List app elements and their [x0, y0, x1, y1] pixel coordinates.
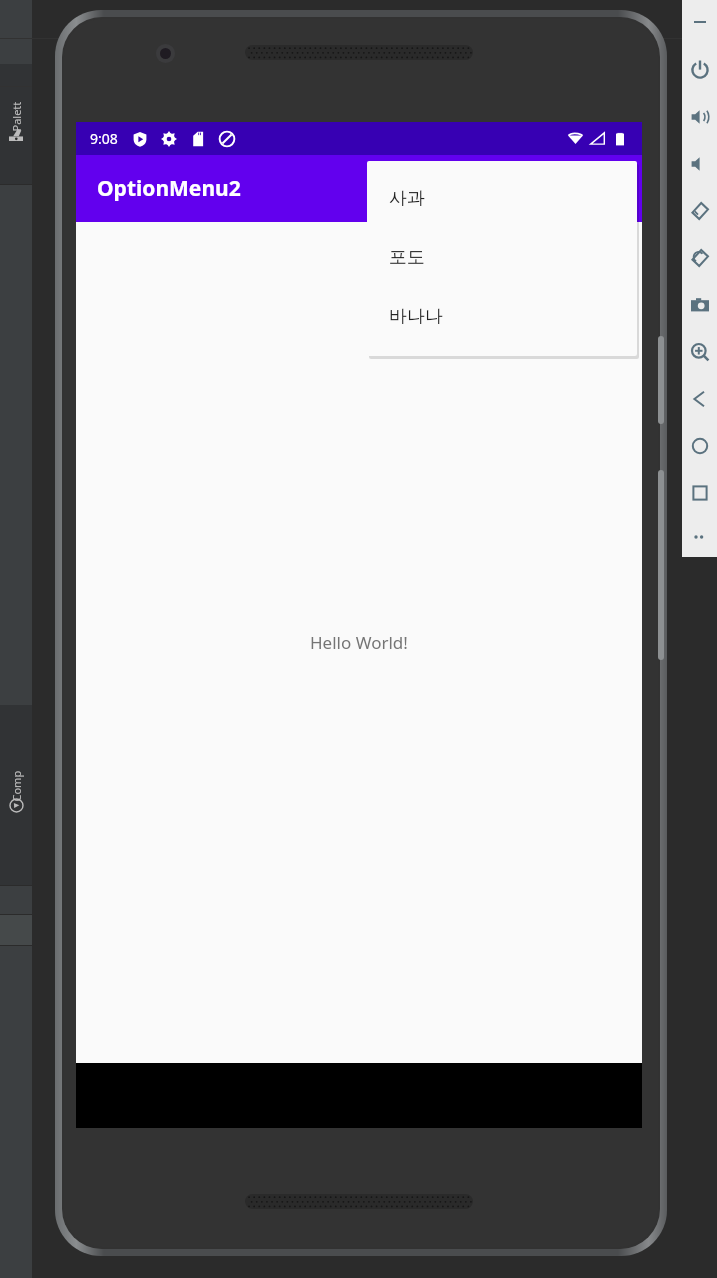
button[interactable]: Zoom [682, 328, 717, 375]
staticText: OptionMenu2 [97, 174, 241, 203]
button[interactable]: Power [682, 46, 717, 93]
button[interactable]: 포도 [367, 228, 637, 287]
staticText: 9:08 [90, 129, 118, 148]
button[interactable]: Palette [0, 64, 32, 184]
staticText: Component Tree [8, 769, 23, 801]
button[interactable]: Rotate left [682, 187, 717, 234]
staticText: 포도 [389, 246, 425, 269]
button[interactable]: Component Tree [0, 705, 32, 885]
button[interactable]: Back [682, 375, 717, 422]
staticText: 바나나 [389, 305, 443, 328]
button[interactable]: Overview [682, 469, 717, 516]
button[interactable]: Minimize [690, 12, 710, 32]
staticText: Palette [8, 99, 23, 131]
button[interactable]: Home [682, 422, 717, 469]
button[interactable]: Screenshot [682, 281, 717, 328]
button[interactable]: Volume down [682, 140, 717, 187]
button[interactable]: More [682, 516, 717, 557]
button[interactable]: 사과 [367, 169, 637, 228]
button[interactable]: 바나나 [367, 287, 637, 346]
staticText: Hello World! [310, 631, 408, 654]
button[interactable]: Rotate right [682, 234, 717, 281]
staticText: 사과 [389, 187, 425, 210]
button[interactable]: Volume up [682, 93, 717, 140]
